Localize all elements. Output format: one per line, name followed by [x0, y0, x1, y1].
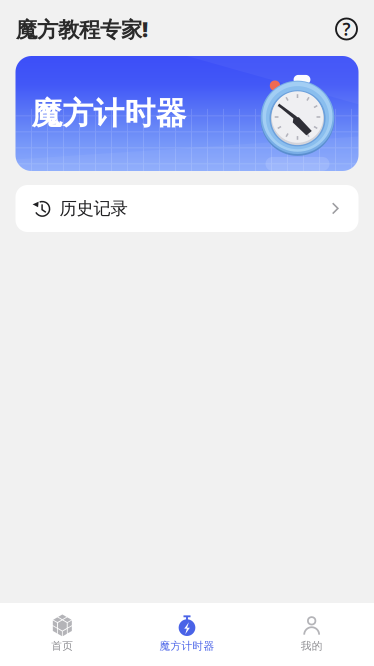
staticText: 魔方计时器 [159, 639, 214, 652]
button[interactable]: 首页 [0, 606, 125, 662]
staticText: 历史记录 [59, 198, 127, 219]
button[interactable]: 魔方计时器 [125, 606, 249, 662]
staticText: 魔方教程专家! [16, 15, 148, 43]
staticText: 首页 [51, 639, 73, 652]
button[interactable]: 魔方计时器 [15, 56, 358, 171]
button[interactable]: 帮助 [336, 18, 357, 39]
button[interactable]: 我的 [249, 606, 374, 662]
staticText: 我的 [301, 639, 323, 652]
staticText: ? [342, 17, 350, 40]
button[interactable]: 历史记录 [15, 185, 358, 232]
staticText: 魔方计时器 [31, 95, 186, 132]
